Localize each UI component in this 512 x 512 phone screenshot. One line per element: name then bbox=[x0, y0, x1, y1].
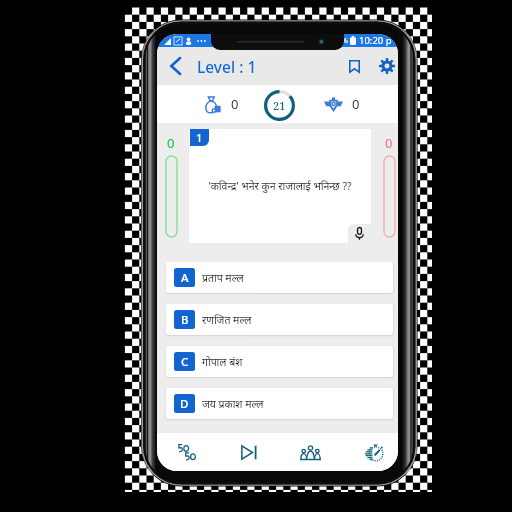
button[interactable]: C bbox=[166, 346, 393, 377]
button[interactable]: Ask the audience bbox=[295, 433, 325, 471]
staticText: Level : 1 bbox=[197, 56, 257, 77]
staticText: 0 bbox=[167, 134, 175, 152]
staticText: D bbox=[180, 396, 189, 412]
button[interactable]: D bbox=[166, 388, 393, 419]
button[interactable]: Speak question bbox=[348, 224, 371, 243]
staticText: B bbox=[181, 312, 189, 328]
button[interactable]: Bookmark bbox=[342, 54, 366, 78]
staticText: प्रताप मल्ल bbox=[202, 271, 244, 285]
staticText: 0 bbox=[352, 95, 360, 113]
staticText: 21 bbox=[273, 98, 286, 113]
staticText: 0 bbox=[231, 95, 239, 113]
staticText: जय प्रकाश मल्ल bbox=[202, 397, 264, 411]
button[interactable]: Settings bbox=[375, 54, 398, 78]
button[interactable]: Fifty fifty bbox=[172, 433, 202, 471]
staticText: A bbox=[181, 270, 189, 286]
button[interactable]: Back bbox=[164, 55, 186, 77]
staticText: C bbox=[181, 354, 189, 370]
staticText: 'कविन्द्र' भनेर कुन राजालाई भनिन्छ ?? bbox=[208, 179, 352, 193]
staticText: % bbox=[342, 36, 348, 46]
staticText: 1 bbox=[196, 130, 203, 145]
staticText: रणजित मल्ल bbox=[202, 313, 252, 327]
button[interactable]: Skip question bbox=[234, 433, 264, 471]
button[interactable]: Extra time bbox=[358, 433, 388, 471]
staticText: 10:20 p bbox=[359, 34, 392, 47]
button[interactable]: A bbox=[166, 262, 393, 293]
button[interactable]: B bbox=[166, 304, 393, 335]
staticText: 0 bbox=[385, 134, 393, 152]
staticText: गोपाल बंश bbox=[202, 355, 243, 369]
